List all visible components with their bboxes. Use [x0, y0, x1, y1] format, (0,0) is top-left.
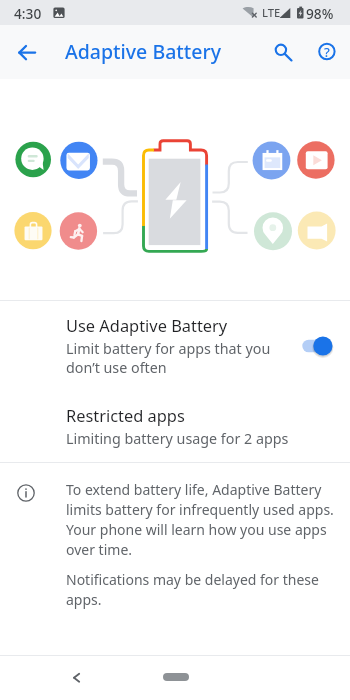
button[interactable]: Help [305, 30, 349, 74]
button[interactable]: Home [163, 673, 189, 681]
button[interactable]: Back [56, 656, 98, 698]
staticText: Limiting battery usage for 2 apps [66, 429, 289, 448]
staticText: To extend battery life, Adaptive Battery… [66, 480, 336, 559]
staticText: Adaptive Battery [65, 38, 221, 65]
button[interactable]: Search [259, 30, 303, 74]
staticText: LTE [262, 5, 281, 20]
staticText: Use Adaptive Battery [66, 314, 228, 336]
button[interactable]: Restricted apps [0, 390, 350, 462]
button[interactable]: Use Adaptive Battery [0, 301, 350, 390]
staticText: Restricted apps [66, 404, 185, 426]
staticText: 98% [306, 4, 334, 23]
staticText: 4:30 [14, 4, 42, 23]
staticText: ? [324, 43, 330, 61]
staticText: Notifications may be delayed for these a… [66, 570, 336, 609]
button[interactable]: Back [5, 30, 50, 75]
staticText: Limit battery for apps that you don’t us… [66, 339, 271, 377]
button[interactable]: Use Adaptive Battery toggle [302, 333, 336, 359]
